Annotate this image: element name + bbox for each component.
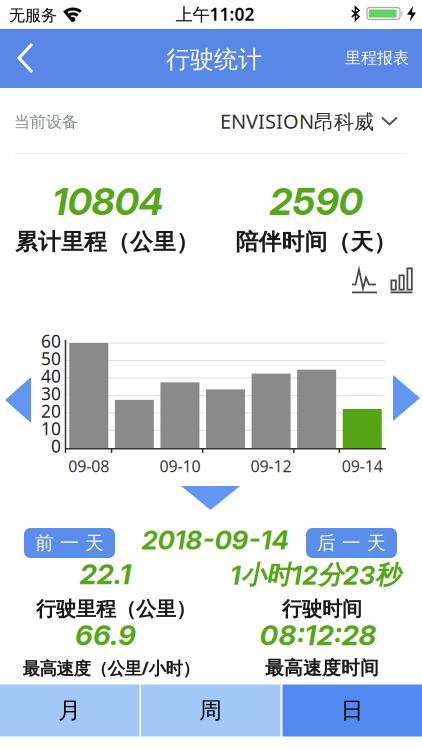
staticText: 后 一 天	[317, 531, 386, 554]
staticText: 09-08	[68, 455, 109, 477]
staticText: 当前设备	[14, 112, 78, 132]
staticText: 08:12:28	[259, 618, 376, 652]
staticText: 周	[199, 697, 222, 724]
staticText: 1小时12分23秒	[230, 559, 400, 591]
staticText: 22.1	[79, 557, 131, 591]
staticText: 陪伴时间（天）	[235, 228, 396, 256]
staticText: 09-12	[251, 455, 292, 477]
staticText: 行驶里程（公里）	[36, 597, 196, 621]
staticText: 66.9	[75, 618, 136, 652]
staticText: 10804	[52, 179, 163, 224]
staticText: 60	[41, 329, 61, 352]
button[interactable]	[390, 267, 412, 294]
staticText: 2018-09-14	[141, 524, 288, 556]
staticText: 上午11:02	[175, 2, 254, 25]
staticText: 20	[41, 399, 61, 422]
staticText: 无服务	[9, 6, 57, 25]
staticText: 行驶时间	[282, 597, 362, 621]
button[interactable]: 日	[282, 684, 422, 736]
button[interactable]: 月	[0, 684, 139, 736]
staticText: 30	[41, 382, 61, 405]
button[interactable]: ENVISION昂科威	[220, 100, 398, 142]
button[interactable]: 后 一 天	[306, 528, 397, 558]
staticText: 月	[58, 697, 81, 724]
staticText: ENVISION昂科威	[220, 108, 374, 134]
button[interactable]: 前 一 天	[24, 528, 115, 558]
staticText: 里程报表	[345, 48, 409, 68]
button[interactable]	[393, 375, 420, 421]
staticText: 最高速度时间	[265, 656, 379, 679]
staticText: 10	[41, 417, 61, 440]
button[interactable]: 周	[141, 684, 280, 736]
staticText: 09-10	[159, 455, 200, 477]
staticText: 前 一 天	[35, 531, 104, 554]
staticText: 50	[41, 347, 61, 370]
button[interactable]: 里程报表	[335, 36, 419, 80]
staticText: 40	[41, 364, 61, 387]
staticText: 行驶统计	[166, 45, 262, 74]
staticText: 日	[341, 697, 364, 724]
staticText: 累计里程（公里）	[15, 228, 199, 256]
button[interactable]	[5, 36, 49, 80]
staticText: 09-14	[342, 455, 383, 477]
staticText: 2590	[269, 179, 362, 224]
staticText: 0	[51, 434, 61, 457]
button[interactable]	[5, 377, 31, 423]
staticText: 最高速度（公里/小时）	[22, 656, 199, 679]
button[interactable]	[352, 267, 377, 294]
